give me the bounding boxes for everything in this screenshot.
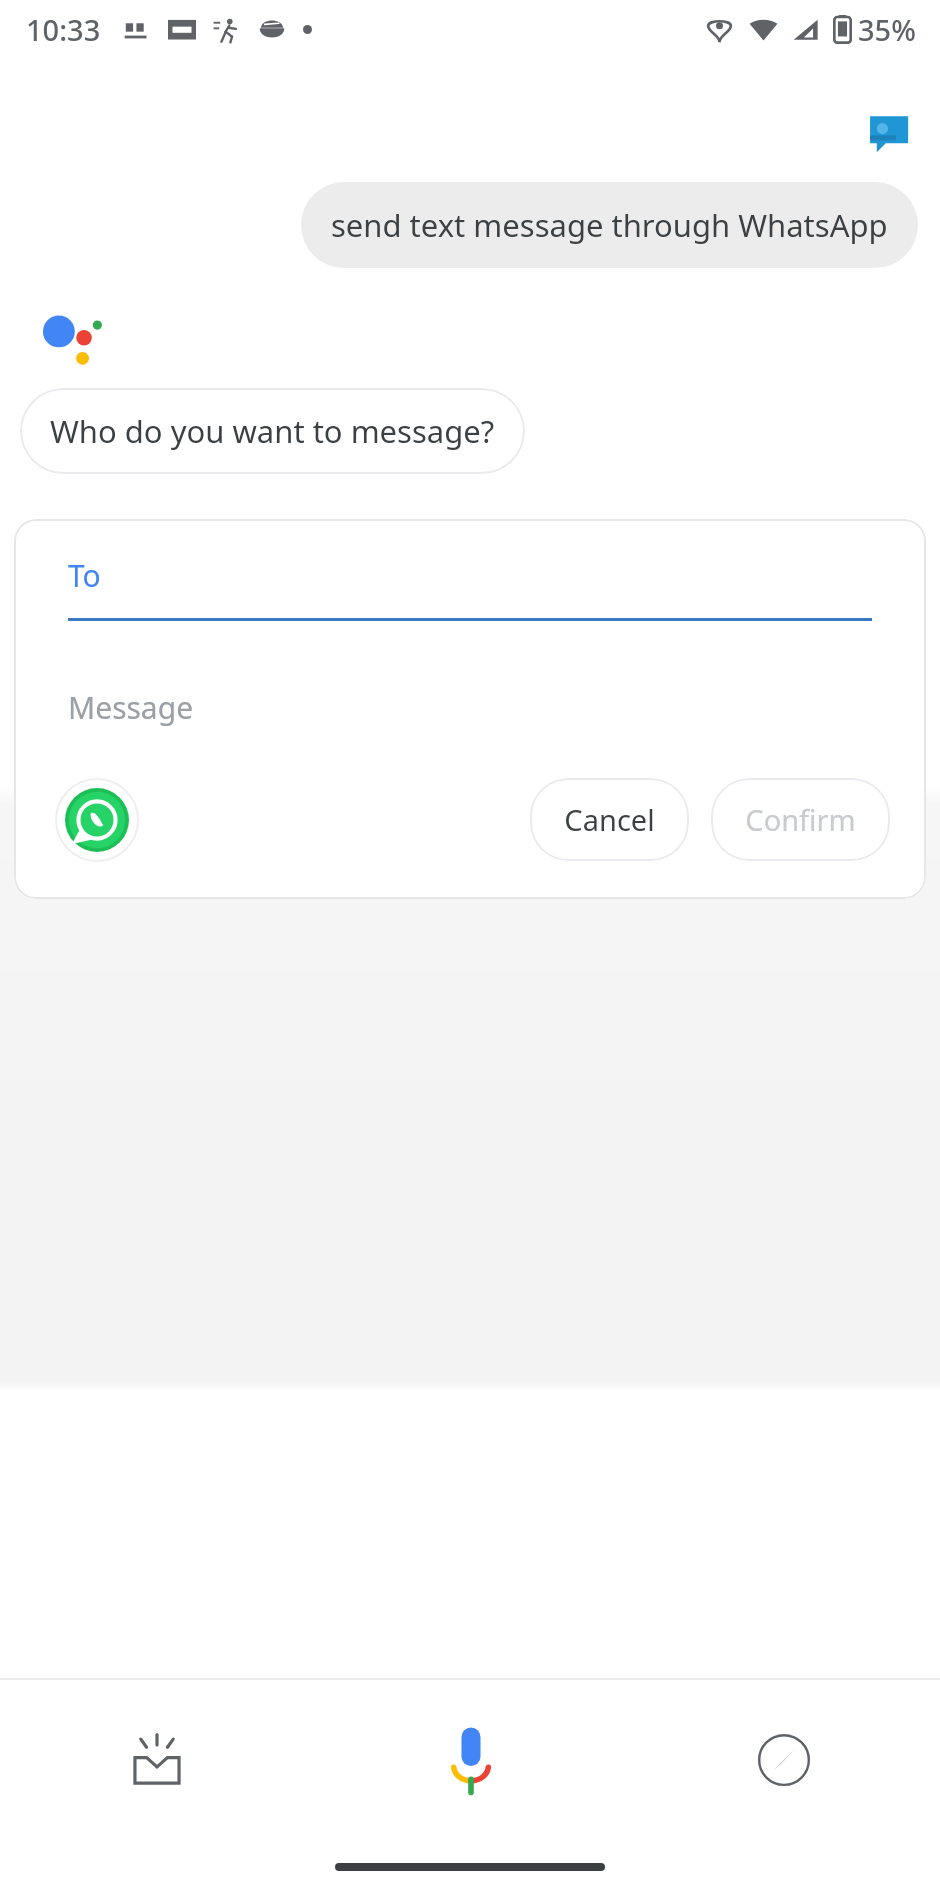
button[interactable]: Explore bbox=[627, 1680, 940, 1840]
button[interactable]: send text message through WhatsApp bbox=[301, 182, 918, 268]
button[interactable]: Snapshot bbox=[0, 1680, 314, 1840]
button[interactable]: To bbox=[68, 555, 872, 621]
button[interactable]: Message bbox=[68, 687, 872, 728]
staticText: Confirm bbox=[745, 800, 856, 839]
button[interactable]: Confirm bbox=[711, 778, 890, 861]
button[interactable]: WhatsApp bbox=[56, 779, 138, 861]
staticText: 35% bbox=[858, 10, 916, 49]
staticText: send text message through WhatsApp bbox=[331, 204, 888, 246]
staticText: Message bbox=[68, 687, 194, 728]
button[interactable]: App icon bbox=[860, 104, 916, 160]
button[interactable]: Voice input bbox=[314, 1680, 627, 1840]
staticText: Cancel bbox=[564, 800, 655, 839]
staticText: Who do you want to message? bbox=[50, 410, 495, 452]
staticText: To bbox=[68, 555, 101, 596]
staticText: 10:33 bbox=[26, 10, 101, 49]
button[interactable]: Cancel bbox=[530, 778, 689, 861]
button[interactable]: Who do you want to message? bbox=[20, 388, 525, 474]
